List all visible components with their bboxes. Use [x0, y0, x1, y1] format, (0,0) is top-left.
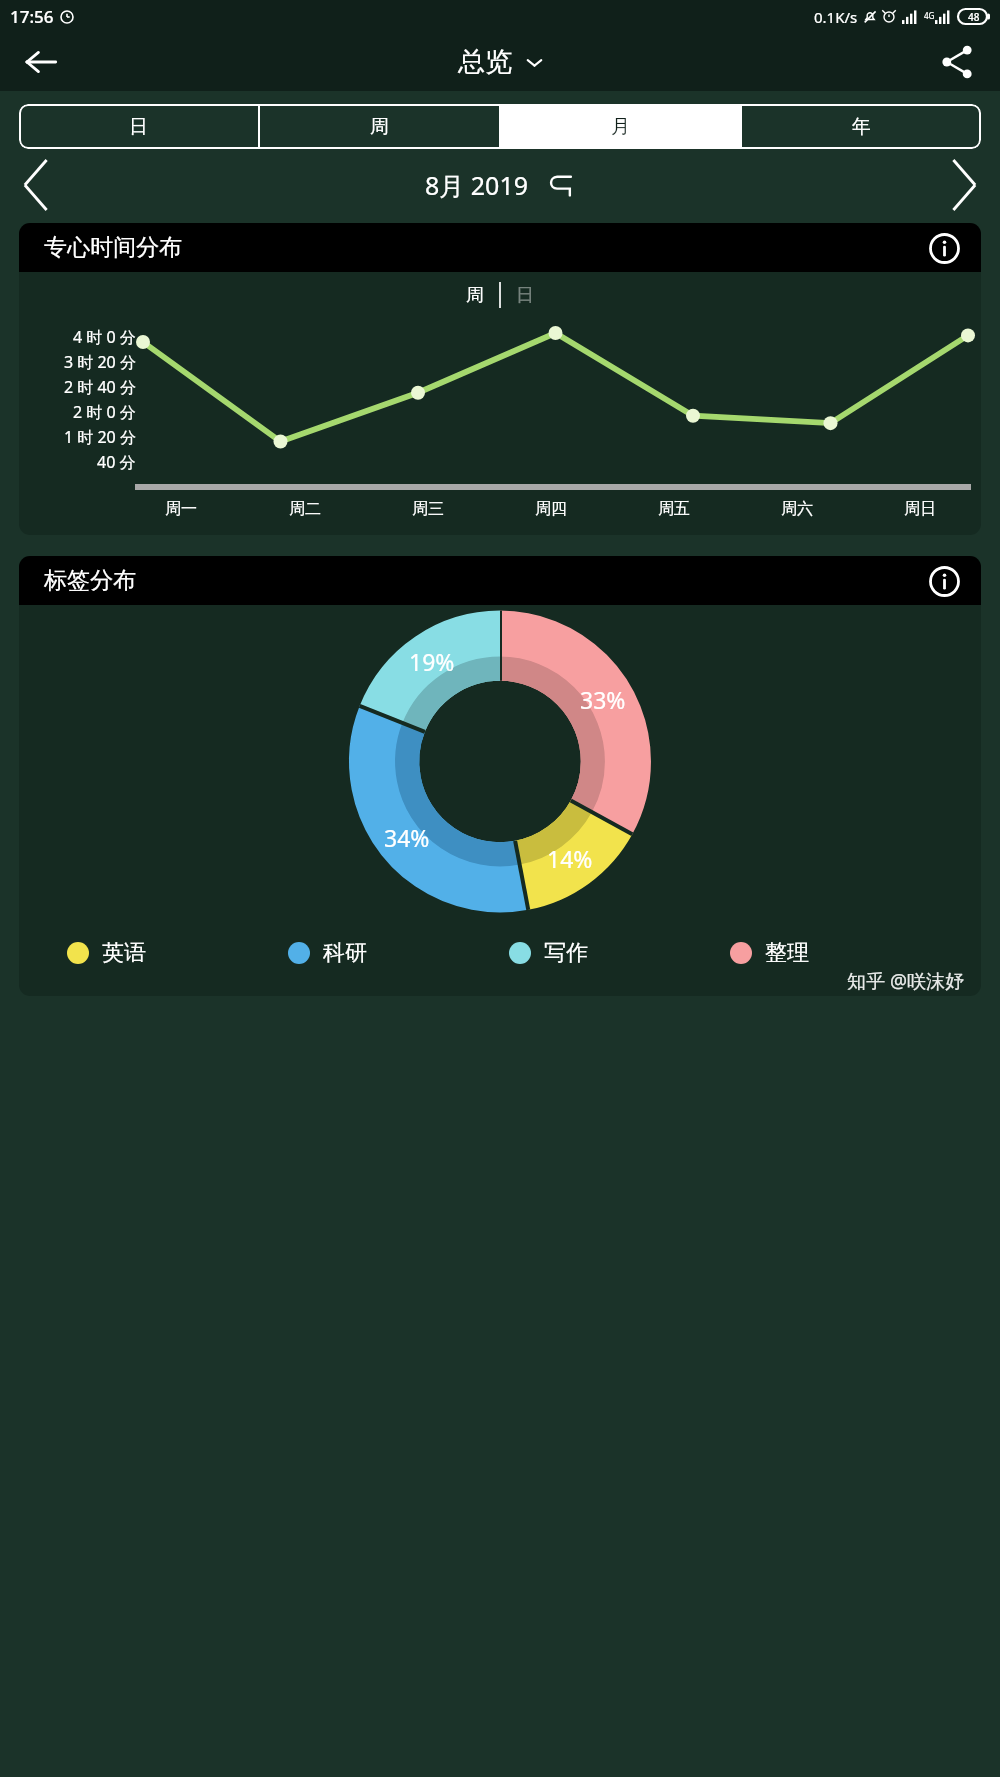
button[interactable]: Share: [928, 33, 986, 91]
button[interactable]: 总览: [458, 45, 543, 79]
staticText: 周一: [165, 499, 197, 519]
staticText: 年: [852, 115, 871, 139]
staticText: 周: [370, 115, 389, 139]
staticText: 8月 2019: [425, 168, 529, 202]
staticText: 写作: [544, 939, 588, 967]
staticText: 33%: [580, 684, 626, 715]
staticText: 标签分布: [44, 566, 136, 595]
staticText: 科研: [323, 939, 367, 967]
staticText: 0.1K/s: [814, 7, 858, 27]
staticText: 日: [129, 115, 148, 139]
staticText: 周日: [904, 499, 936, 519]
staticText: 周四: [535, 499, 567, 519]
button[interactable]: 年: [742, 104, 981, 149]
staticText: 周: [466, 284, 484, 307]
staticText: 知乎 @咲沫妤: [847, 968, 965, 994]
staticText: 周三: [412, 499, 444, 519]
button[interactable]: 写作: [509, 939, 730, 967]
button[interactable]: 整理: [730, 939, 951, 967]
button[interactable]: 英语: [67, 939, 288, 967]
staticText: 3 时 20 分: [64, 351, 136, 373]
button[interactable]: 科研: [288, 939, 509, 967]
staticText: 4G: [924, 10, 935, 21]
button[interactable]: Info: [923, 560, 965, 602]
staticText: 专心时间分布: [44, 233, 182, 262]
staticText: 4 时 0 分: [73, 326, 136, 348]
button[interactable]: 日: [516, 284, 534, 307]
button[interactable]: Next period: [934, 157, 994, 213]
button[interactable]: 周: [260, 104, 499, 149]
staticText: 1 时 20 分: [64, 426, 136, 448]
staticText: 英语: [102, 939, 146, 967]
staticText: 17:56: [10, 5, 54, 28]
staticText: 总览: [458, 45, 512, 79]
staticText: 周六: [781, 499, 813, 519]
button[interactable]: Back: [12, 33, 70, 91]
button[interactable]: Previous period: [6, 157, 66, 213]
staticText: 19%: [409, 646, 455, 677]
staticText: 2 时 0 分: [73, 401, 136, 423]
button[interactable]: 周: [466, 284, 484, 307]
staticText: 周二: [289, 499, 321, 519]
staticText: 月: [611, 115, 630, 139]
staticText: 2 时 40 分: [64, 376, 136, 398]
staticText: 周五: [658, 499, 690, 519]
staticText: 48: [968, 10, 980, 24]
staticText: 整理: [765, 939, 809, 967]
staticText: 34%: [384, 822, 430, 853]
button[interactable]: Info: [923, 227, 965, 269]
staticText: 14%: [547, 843, 593, 874]
button[interactable]: Reset to today: [546, 170, 576, 200]
button[interactable]: 日: [19, 104, 258, 149]
staticText: 40 分: [97, 451, 136, 473]
staticText: 日: [516, 284, 534, 307]
button[interactable]: 月: [501, 104, 740, 149]
